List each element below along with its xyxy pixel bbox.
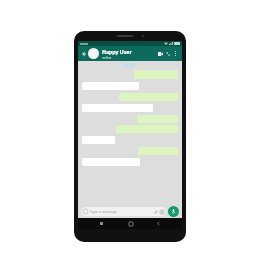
button[interactable]: Record voice message [168,206,179,217]
button[interactable]: More options [172,50,179,57]
button[interactable]: Back [154,219,163,228]
staticText: online [102,56,112,60]
button[interactable]: Back [81,51,87,57]
button[interactable]: Contact avatar [88,48,99,59]
button[interactable]: Happy User [102,48,156,60]
staticText: Type a message [90,209,117,214]
button[interactable]: Attach [153,209,158,214]
button[interactable]: Recent apps [97,219,106,228]
staticText: Happy User [102,48,132,55]
button[interactable]: Video call [156,50,164,58]
button[interactable]: Home [126,219,135,228]
button[interactable]: Camera [159,209,164,214]
button[interactable]: Voice call [164,50,172,58]
button[interactable]: Type a message [81,207,166,216]
